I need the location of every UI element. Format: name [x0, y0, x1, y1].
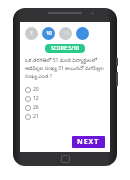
button[interactable]: NEXT [72, 136, 105, 148]
staticText: 15 [63, 30, 69, 37]
button[interactable]: Step [76, 27, 89, 40]
staticText: 1 [30, 30, 33, 37]
staticText: SCORE:3/10 [51, 45, 79, 52]
button[interactable]: Step 15 [59, 27, 72, 40]
staticText: 26 [33, 104, 39, 111]
button[interactable]: 20 [25, 85, 105, 94]
button[interactable]: Step 10 [42, 27, 55, 40]
staticText: ఒక తరగతిలో 51 మంది విద్యార్థులలో ఆడపిల్ల… [25, 57, 105, 81]
staticText: NEXT [77, 137, 100, 147]
staticText: 21 [33, 113, 39, 120]
staticText: 20 [33, 86, 39, 93]
button[interactable]: Step 1 [25, 27, 38, 40]
button[interactable]: 12 [25, 94, 105, 103]
button[interactable]: 26 [25, 103, 105, 112]
button[interactable]: 21 [25, 112, 105, 121]
staticText: 10 [46, 30, 52, 37]
button[interactable]: SCORE:3/10 [45, 44, 85, 53]
staticText: 12 [33, 95, 39, 102]
